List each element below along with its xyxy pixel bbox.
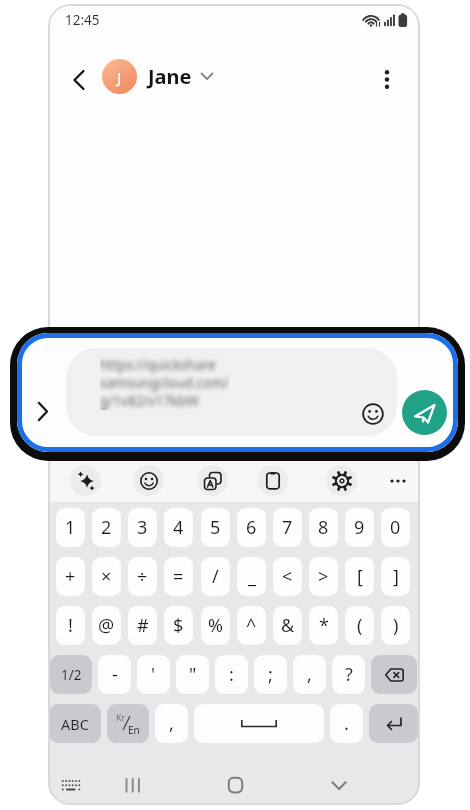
button[interactable]: ABC (49, 704, 101, 743)
button[interactable] (133, 465, 164, 496)
staticText: 9 (354, 515, 365, 540)
button[interactable] (373, 64, 401, 94)
button[interactable]: * (309, 606, 338, 645)
staticText: ( (357, 613, 363, 638)
button[interactable] (219, 770, 251, 800)
button[interactable]: @ (92, 606, 121, 645)
staticText: ; (268, 662, 273, 687)
button[interactable]: 5 (201, 508, 230, 547)
button[interactable] (64, 62, 94, 98)
button[interactable]: 8 (309, 508, 338, 547)
staticText: ' (151, 662, 156, 687)
button[interactable] (359, 400, 386, 427)
button[interactable] (257, 465, 288, 496)
button[interactable]: ) (381, 606, 410, 645)
button[interactable]: 6 (237, 508, 266, 547)
button[interactable]: ] (381, 557, 410, 596)
staticText: + (65, 564, 76, 589)
button[interactable] (116, 770, 148, 800)
staticText: # (137, 613, 149, 638)
staticText: ] (393, 564, 399, 589)
staticText: , (307, 662, 312, 687)
staticText: Kr (116, 711, 126, 723)
button[interactable]: / (201, 557, 230, 596)
staticText: Jane (148, 63, 192, 90)
button[interactable]: ' (137, 655, 170, 694)
staticText: . (344, 711, 349, 736)
staticText: ! (68, 613, 73, 638)
button[interactable]: . (330, 704, 363, 743)
staticText: 12:45 (65, 11, 100, 29)
button[interactable]: , (293, 655, 326, 694)
button[interactable]: & (273, 606, 302, 645)
button[interactable]: , (155, 704, 188, 743)
staticText: ) (393, 613, 399, 638)
staticText: : (229, 662, 234, 687)
staticText: 1/2 (61, 666, 82, 684)
staticText: = (173, 564, 184, 589)
staticText: ABC (61, 714, 89, 734)
button[interactable]: Kr (107, 704, 149, 743)
button[interactable]: 3 (128, 508, 157, 547)
button[interactable]: _ (237, 557, 266, 596)
button[interactable]: ^ (237, 606, 266, 645)
button[interactable] (369, 704, 418, 743)
button[interactable] (197, 465, 228, 496)
staticText: - (112, 662, 118, 687)
button[interactable]: Jane (148, 63, 213, 90)
staticText: 1 (65, 515, 76, 540)
staticText: ? (345, 662, 353, 687)
button[interactable]: 1/2 (50, 655, 92, 694)
staticText: 3 (137, 515, 148, 540)
button[interactable]: × (92, 557, 121, 596)
staticText: / (212, 564, 219, 589)
button[interactable] (402, 390, 447, 435)
button[interactable]: ? (332, 655, 365, 694)
button[interactable]: < (273, 557, 302, 596)
staticText: 7 (282, 515, 293, 540)
button[interactable]: ÷ (128, 557, 157, 596)
button[interactable]: J (102, 59, 137, 94)
button[interactable]: % (201, 606, 230, 645)
staticText: & (281, 613, 295, 638)
button[interactable]: 0 (381, 508, 410, 547)
button[interactable]: : (215, 655, 248, 694)
button[interactable]: $ (164, 606, 193, 645)
button[interactable]: ( (345, 606, 374, 645)
staticText: , (169, 711, 174, 736)
button[interactable]: 2 (92, 508, 121, 547)
button[interactable]: ; (254, 655, 287, 694)
button[interactable]: # (128, 606, 157, 645)
staticText: 5 (210, 515, 221, 540)
button[interactable]: - (98, 655, 131, 694)
button[interactable] (70, 465, 101, 496)
button[interactable]: 4 (164, 508, 193, 547)
button[interactable]: ! (56, 606, 85, 645)
button[interactable] (66, 348, 397, 436)
staticText: 4 (173, 515, 184, 540)
button[interactable]: [ (345, 557, 374, 596)
button[interactable]: + (56, 557, 85, 596)
button[interactable]: 9 (345, 508, 374, 547)
button[interactable]: 7 (273, 508, 302, 547)
button[interactable]: 1 (56, 508, 85, 547)
button[interactable]: " (176, 655, 209, 694)
staticText: @ (98, 613, 115, 638)
button[interactable] (56, 772, 86, 798)
staticText: J (117, 67, 122, 87)
button[interactable] (326, 465, 357, 496)
staticText: * (319, 613, 329, 638)
button[interactable] (323, 770, 355, 800)
staticText: samsungcloud.com/ (100, 374, 229, 392)
button[interactable] (30, 396, 56, 426)
button[interactable]: = (164, 557, 193, 596)
staticText: 2 (101, 515, 112, 540)
button[interactable] (382, 465, 413, 496)
button[interactable]: > (309, 557, 338, 596)
staticText: ^ (246, 613, 257, 638)
button[interactable] (371, 655, 417, 694)
staticText: g/1v82/v17kbW (100, 392, 199, 410)
button[interactable] (194, 704, 324, 743)
staticText: ÷ (137, 564, 148, 589)
staticText: [ (357, 564, 363, 589)
